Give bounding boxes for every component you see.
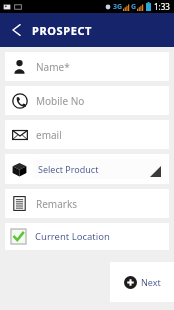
staticText: Select Product xyxy=(38,163,99,175)
button[interactable]: Back xyxy=(6,19,28,41)
button[interactable]: Mobile No xyxy=(5,86,169,115)
button[interactable]: Remarks xyxy=(5,189,169,218)
staticText: Next xyxy=(141,276,161,288)
button[interactable]: Current Location xyxy=(5,223,169,250)
staticText: G xyxy=(131,2,137,12)
button[interactable]: Name* xyxy=(5,52,169,81)
staticText: Remarks xyxy=(36,197,78,211)
staticText: 1:33 xyxy=(154,1,170,12)
staticText: Mobile No xyxy=(36,94,85,108)
button[interactable]: Next xyxy=(110,262,174,302)
button[interactable]: Select Product xyxy=(5,154,169,184)
staticText: 3G xyxy=(113,2,123,12)
staticText: PROSPECT xyxy=(32,23,93,38)
button[interactable]: email xyxy=(5,120,169,149)
staticText: email xyxy=(36,128,62,142)
staticText: Current Location xyxy=(35,230,110,243)
staticText: Name* xyxy=(36,60,70,74)
